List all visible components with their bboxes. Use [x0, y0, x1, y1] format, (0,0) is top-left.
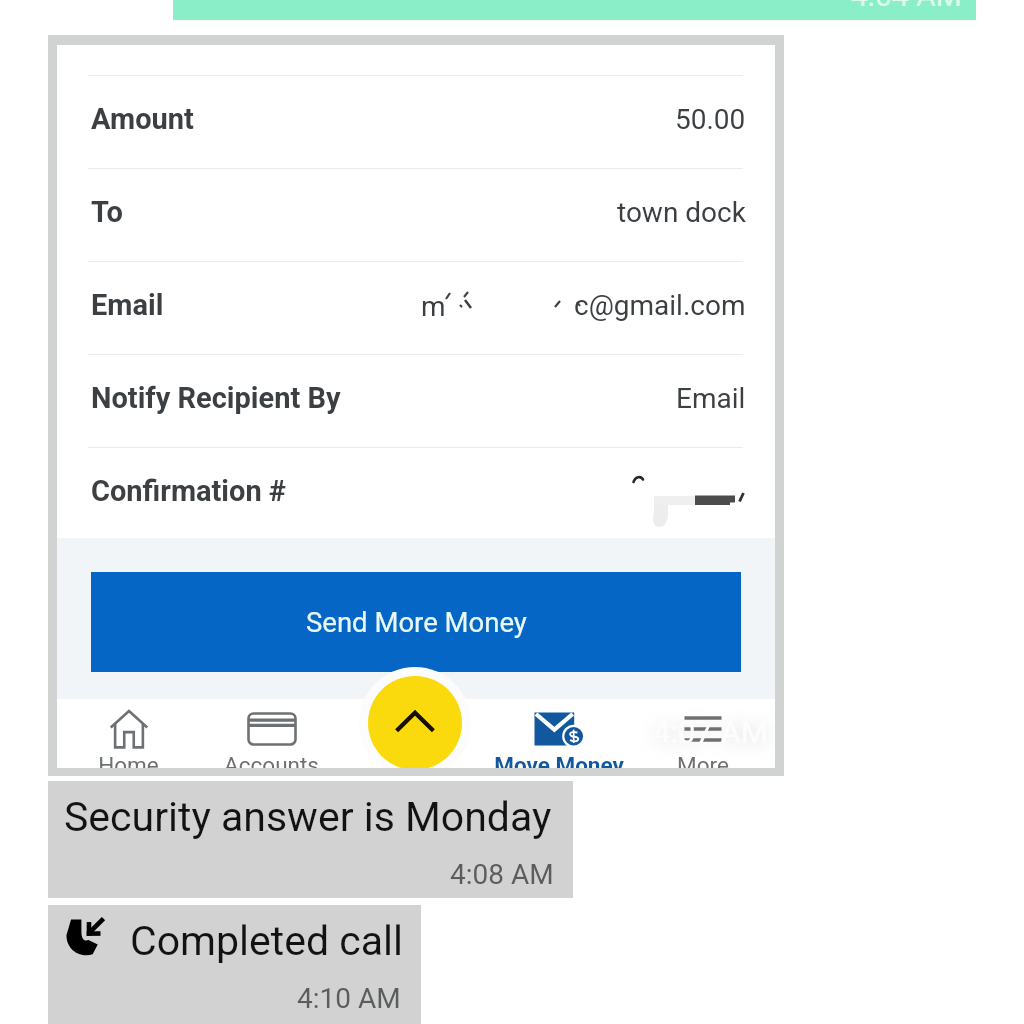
button[interactable]: Accounts [200, 699, 343, 768]
staticText: Notify Recipient By [91, 381, 341, 415]
staticText: m [421, 290, 446, 323]
button[interactable]: Expand quick actions [368, 676, 462, 768]
staticText: 4:07 AM [653, 714, 768, 750]
button[interactable]: Completed call [48, 905, 421, 1024]
button[interactable]: Confirmation # [57, 448, 775, 540]
staticText: 4:04 AM [851, 0, 963, 13]
other: More [677, 708, 729, 750]
staticText: More [677, 752, 729, 768]
button[interactable]: Security answer is Monday [48, 781, 573, 898]
button[interactable]: 4:04 AM [173, 0, 976, 20]
staticText: Home [98, 752, 159, 768]
staticText: Security answer is Monday [64, 793, 552, 841]
button[interactable]: Home [57, 699, 200, 768]
button[interactable]: Move Money [487, 699, 631, 768]
other: Completed call [63, 914, 109, 960]
other: Home [103, 708, 155, 750]
button[interactable]: Notify Recipient By [57, 355, 775, 447]
staticText: Email [676, 382, 746, 415]
button[interactable]: More [631, 699, 775, 768]
other: Move Money [533, 708, 585, 750]
staticText: Completed call [130, 917, 403, 965]
button[interactable]: To [57, 169, 775, 261]
staticText: Move Money [494, 752, 624, 768]
staticText: To [91, 195, 123, 229]
staticText: town dock [617, 196, 746, 229]
staticText: c@gmail.com [574, 289, 746, 322]
button[interactable]: Amount [48, 35, 784, 776]
staticText: 4:08 AM [450, 858, 554, 891]
button[interactable]: Amount [57, 76, 775, 168]
button[interactable]: Email [57, 262, 775, 354]
staticText: Send More Money [306, 606, 527, 638]
staticText: 50.00 [675, 103, 746, 136]
staticText: 4:10 AM [297, 982, 401, 1015]
button[interactable]: Send More Money [91, 572, 741, 672]
staticText: Email [91, 288, 164, 322]
staticText: Accounts [224, 752, 319, 768]
staticText: Confirmation # [91, 474, 287, 508]
staticText: Amount [91, 102, 194, 136]
other: Accounts [246, 708, 298, 750]
